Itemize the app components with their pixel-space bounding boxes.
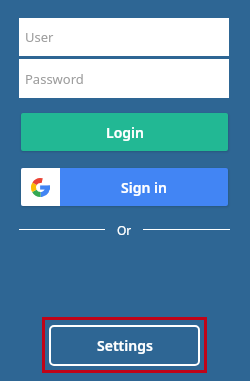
button[interactable]: Login xyxy=(21,113,228,151)
staticText: Password xyxy=(25,70,84,88)
staticText: Or xyxy=(117,222,132,238)
other: Google xyxy=(31,178,50,197)
staticText: Sign in xyxy=(121,178,167,197)
button[interactable]: Google xyxy=(21,168,228,206)
button[interactable]: Password xyxy=(19,59,229,98)
button[interactable]: User xyxy=(19,18,229,56)
staticText: User xyxy=(25,28,54,46)
staticText: Settings xyxy=(97,336,153,355)
staticText: Login xyxy=(106,123,144,142)
button[interactable]: Settings xyxy=(49,325,200,366)
